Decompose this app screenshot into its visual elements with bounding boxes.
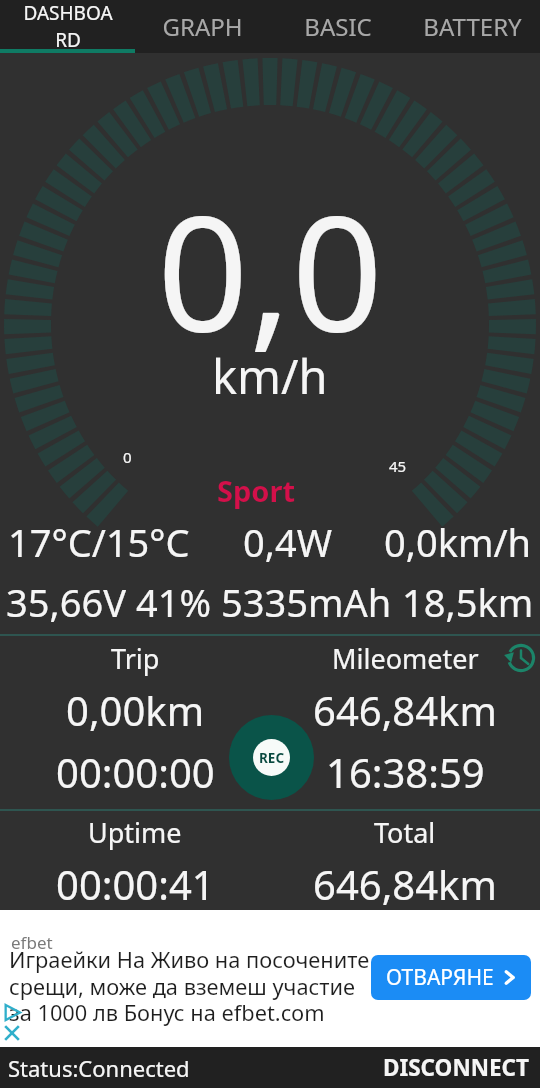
button[interactable]: History [503,640,539,676]
staticText: 0,0km/h [384,516,532,568]
staticText: Sport [217,471,295,510]
staticText: ОТВАРЯНЕ [386,963,494,992]
button[interactable]: Record [229,715,314,800]
staticText: Trip [111,640,160,677]
staticText: 41% [136,576,212,628]
staticText: 17°C/15°C [8,516,190,568]
staticText: BATTERY [423,10,522,43]
staticText: 5335mAh [221,576,392,628]
button[interactable]: DASHBOA RD [0,0,135,53]
staticText: km/h [212,344,328,408]
staticText: Uptime [88,814,182,851]
staticText: 18,5km [402,576,534,628]
staticText: 0,4W [243,516,332,568]
staticText: 646,84km [313,857,497,911]
button[interactable]: BATTERY [405,0,540,53]
staticText: Status:Connected [8,1053,190,1083]
staticText: DASHBOA RD [23,0,113,53]
staticText: Играейки На Живо на посочените срещи, мо… [9,945,370,1027]
button[interactable]: BASIC [270,0,405,53]
staticText: 0,0 [157,160,383,378]
staticText: 35,66V [6,576,126,628]
button[interactable]: ОТВАРЯНЕ [371,955,531,1000]
staticText: 0 [123,447,132,467]
staticText: Mileometer [332,640,479,677]
staticText: GRAPH [162,10,243,43]
staticText: efbet [11,931,53,954]
button[interactable]: GRAPH [135,0,270,53]
staticText: BASIC [304,10,372,43]
staticText: 16:38:59 [326,745,485,799]
staticText: 646,84km [313,683,497,737]
staticText: 45 [389,456,407,476]
staticText: Total [374,814,436,851]
staticText: 00:00:00 [56,745,215,799]
staticText: REC [259,749,285,767]
staticText: 00:00:41 [56,857,215,911]
staticText: 0,00km [66,683,205,737]
staticText: DISCONNECT [383,1052,530,1083]
